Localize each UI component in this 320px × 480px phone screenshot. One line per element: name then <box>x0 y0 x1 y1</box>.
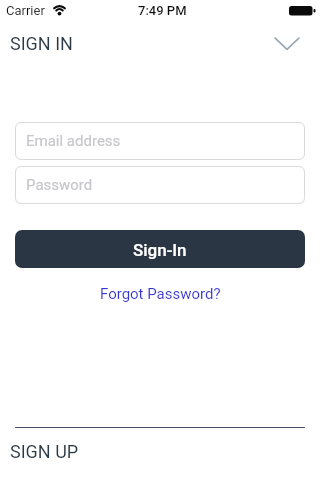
button[interactable]: Sign-In <box>15 230 305 268</box>
button[interactable]: Password <box>15 166 305 204</box>
button[interactable]: Forgot Password? <box>96 283 225 305</box>
staticText: 7:49 PM <box>138 3 187 18</box>
button[interactable]: SIGN UP <box>0 434 320 464</box>
staticText: Forgot Password? <box>100 285 221 303</box>
staticText: Carrier <box>6 3 45 18</box>
button[interactable]: SIGN IN <box>0 28 320 56</box>
staticText: Password <box>26 176 93 194</box>
staticText: SIGN UP <box>10 441 79 462</box>
staticText: SIGN IN <box>10 33 73 54</box>
staticText: Sign-In <box>133 240 187 260</box>
button[interactable]: Email address <box>15 122 305 160</box>
staticText: Email address <box>26 132 121 150</box>
